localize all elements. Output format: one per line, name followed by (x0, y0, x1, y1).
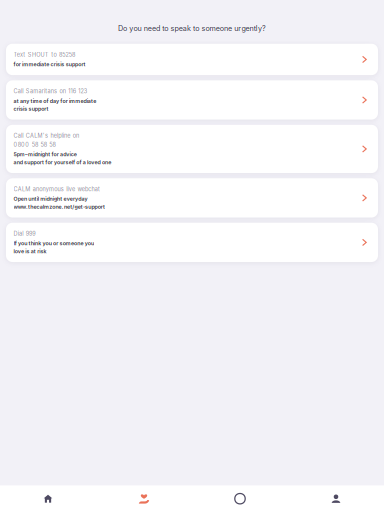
button[interactable]: Support (96, 485, 192, 512)
staticText: and support for yourself of a loved one (13, 159, 111, 165)
button[interactable]: Breathe (192, 485, 288, 512)
button[interactable]: Dial 999 (6, 223, 378, 262)
staticText: for immediate crisis support (13, 61, 86, 68)
staticText: love is at risk (13, 248, 47, 254)
button[interactable]: Home (0, 485, 96, 512)
staticText: Call Samaritans on 116 123 (13, 88, 87, 95)
staticText: www.thecalmzone.net/get-support (13, 203, 105, 210)
staticText: Text SHOUT to 85258 (13, 51, 75, 58)
button[interactable]: Call CALM's helpline on (6, 125, 378, 173)
button[interactable]: Text SHOUT to 85258 (6, 44, 378, 75)
staticText: Call CALM's helpline on (13, 132, 79, 139)
staticText: 0800 58 58 58 (13, 141, 55, 148)
staticText: Open until midnight everyday (13, 196, 88, 202)
staticText: 5pm–midnight for advice (13, 151, 77, 158)
button[interactable]: Profile (288, 485, 384, 512)
staticText: Do you need to speak to someone urgently… (118, 24, 266, 33)
button[interactable]: CALM anonymous live webchat (6, 178, 378, 218)
staticText: CALM anonymous live webchat (13, 186, 100, 193)
staticText: Dial 999 (13, 230, 35, 237)
staticText: If you think you or someone you (13, 240, 94, 247)
button[interactable]: Call Samaritans on 116 123 (6, 80, 378, 120)
staticText: crisis support (13, 106, 48, 112)
staticText: at any time of day for immediate (13, 98, 96, 104)
